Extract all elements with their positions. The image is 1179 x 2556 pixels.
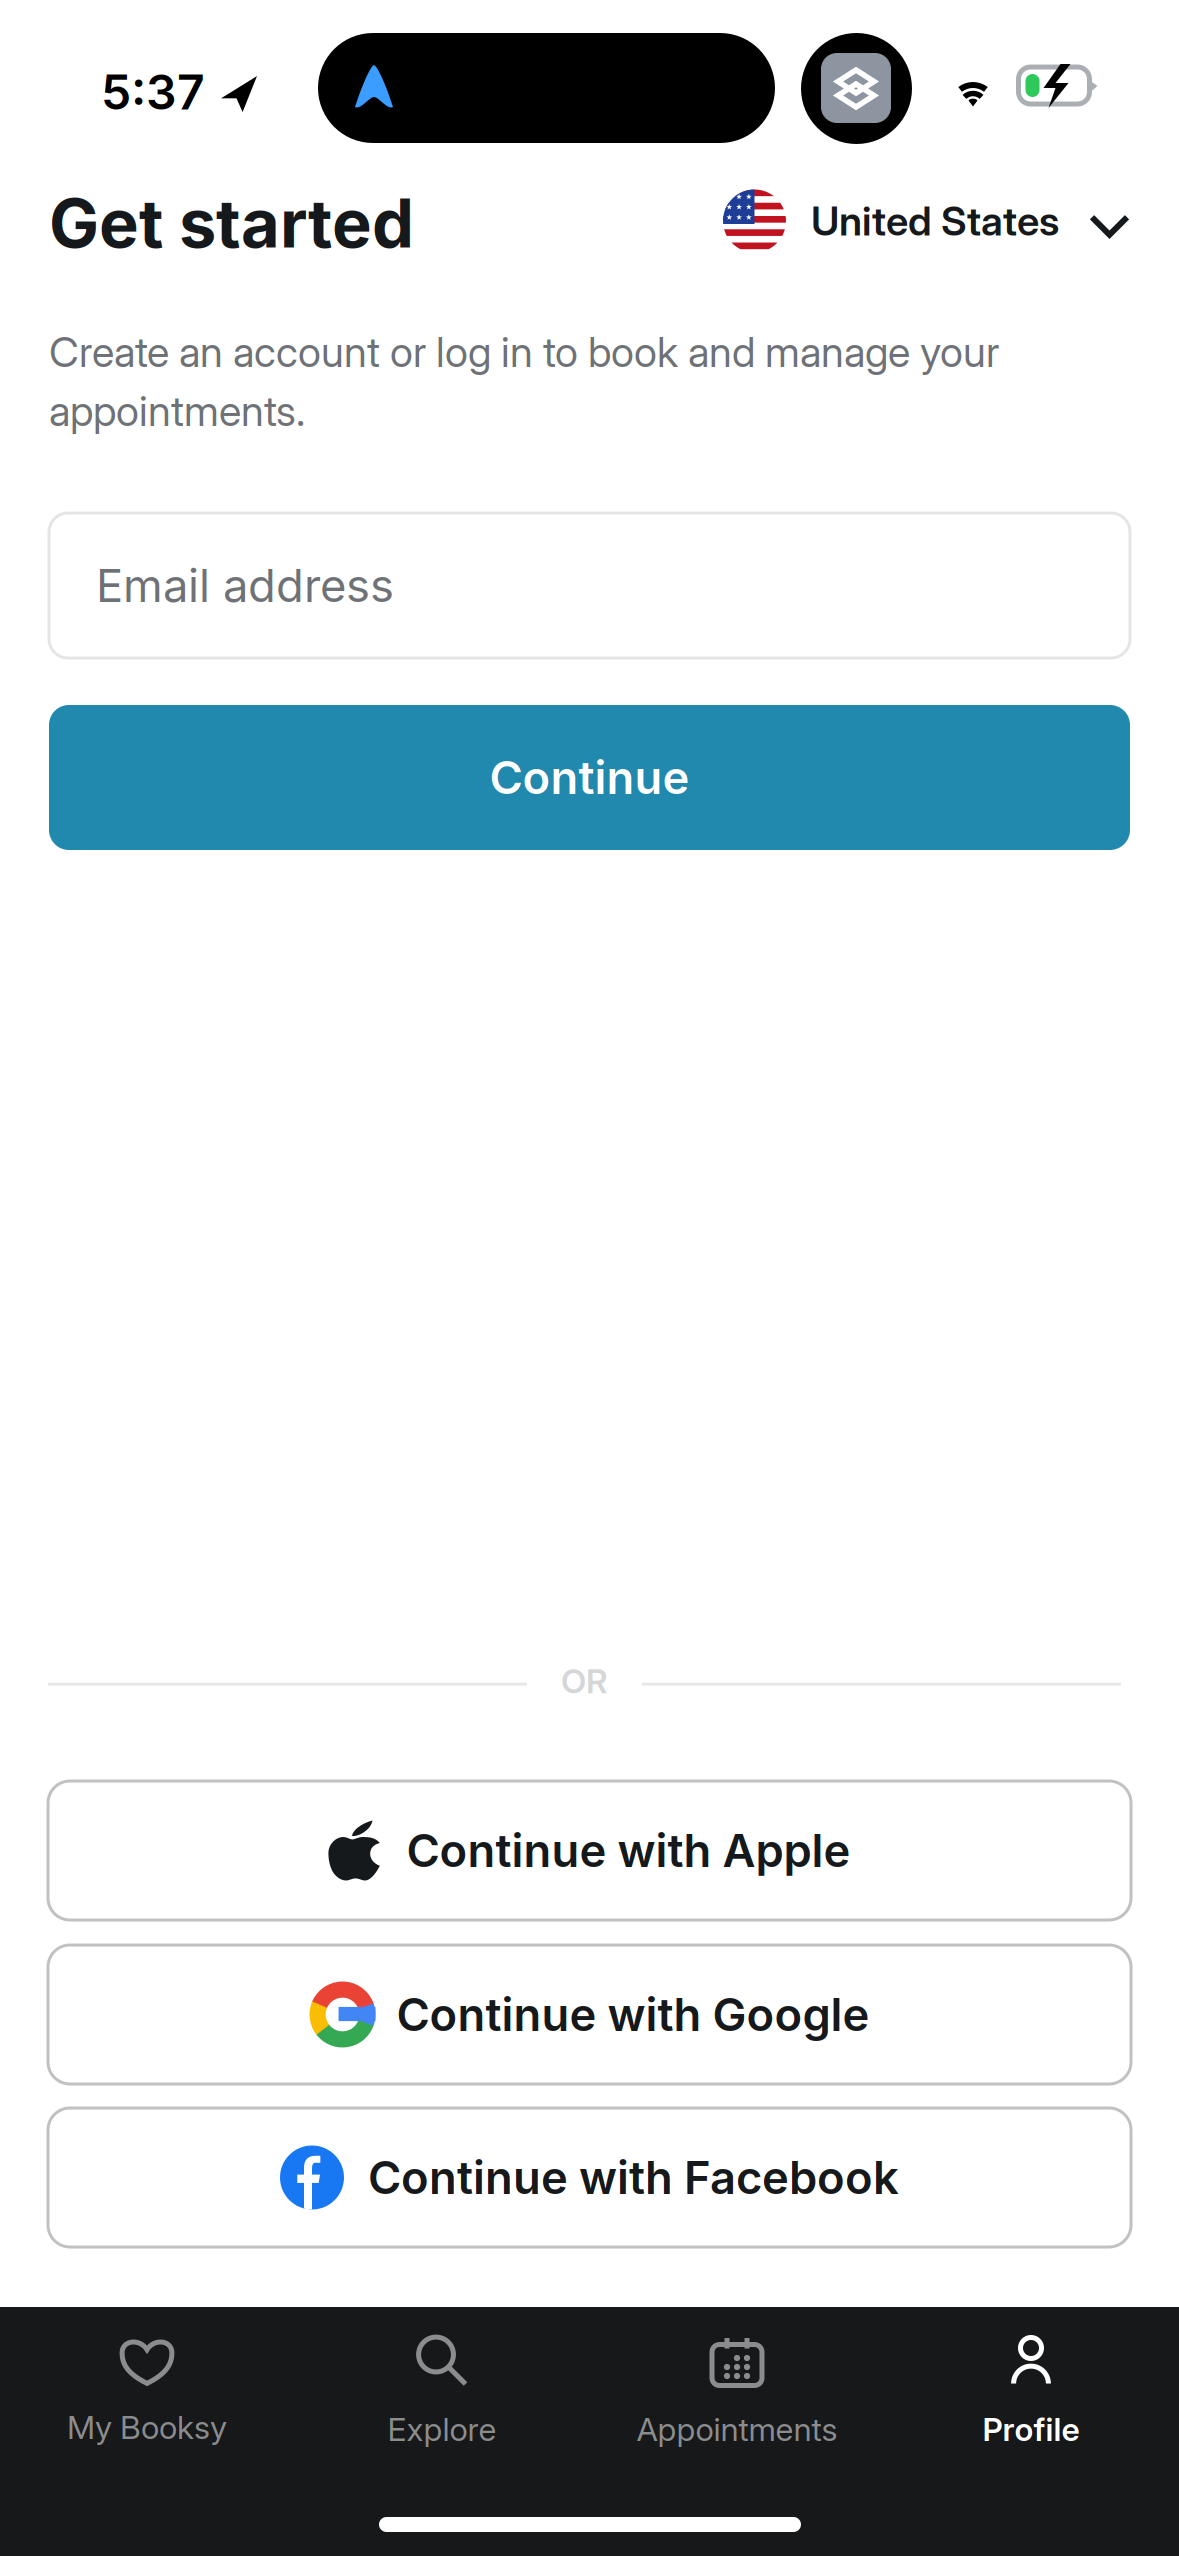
button[interactable]: Explore bbox=[302, 2333, 582, 2449]
staticText: Create an account or log in to book and … bbox=[49, 327, 999, 377]
staticText: Continue with Facebook bbox=[368, 2150, 899, 2205]
staticText: OR bbox=[561, 1661, 608, 1701]
staticText: Email address bbox=[96, 558, 394, 613]
button[interactable]: My Booksy bbox=[7, 2336, 287, 2447]
staticText: Continue with Google bbox=[396, 1987, 869, 2042]
staticText: Profile bbox=[982, 2410, 1079, 2449]
button[interactable]: Continue with Apple bbox=[48, 1781, 1131, 1920]
staticText: Continue with Apple bbox=[407, 1823, 851, 1878]
staticText: 5:37 bbox=[101, 63, 205, 121]
button[interactable]: Appointments bbox=[597, 2333, 877, 2449]
button[interactable]: Continue bbox=[49, 705, 1130, 850]
staticText: Continue bbox=[489, 750, 689, 805]
staticText: appointments. bbox=[49, 386, 305, 436]
staticText: Get started bbox=[49, 183, 414, 264]
button[interactable]: United States bbox=[723, 188, 1130, 254]
staticText: My Booksy bbox=[67, 2408, 227, 2447]
button[interactable]: Continue with Facebook bbox=[48, 2108, 1131, 2247]
staticText: Explore bbox=[387, 2410, 496, 2449]
button[interactable]: Email address bbox=[49, 513, 1130, 658]
staticText: United States bbox=[811, 197, 1059, 245]
button[interactable]: Continue with Google bbox=[48, 1945, 1131, 2084]
button[interactable]: Profile bbox=[891, 2333, 1171, 2449]
staticText: Appointments bbox=[636, 2410, 837, 2449]
